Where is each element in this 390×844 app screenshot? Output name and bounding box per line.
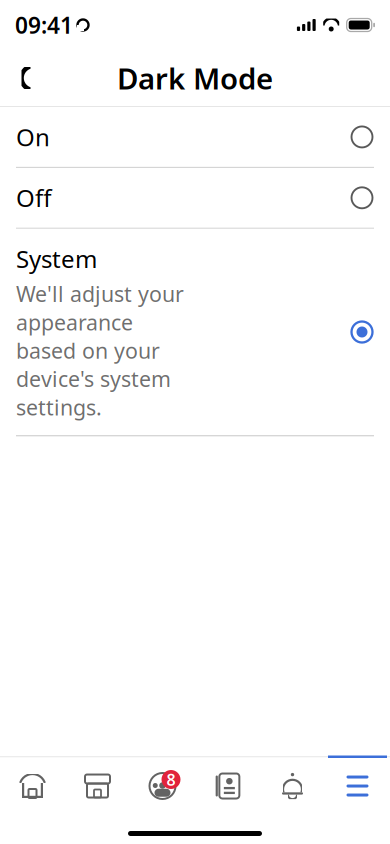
staticText: We'll adjust your appearance based on yo… <box>16 280 184 421</box>
staticText: On <box>16 121 50 153</box>
button[interactable]: Menu <box>325 758 390 814</box>
button[interactable]: Notifications <box>260 758 325 814</box>
button[interactable]: Home <box>0 758 65 814</box>
button[interactable]: Back <box>4 55 48 101</box>
button[interactable]: Groups <box>130 758 195 814</box>
button[interactable]: News <box>195 758 260 814</box>
staticText: 8 <box>166 769 175 790</box>
staticText: Off <box>16 182 52 214</box>
button[interactable]: Off <box>0 168 390 228</box>
button[interactable]: Marketplace <box>65 758 130 814</box>
staticText: System <box>16 243 97 275</box>
staticText: Dark Mode <box>117 58 273 97</box>
button[interactable]: On <box>0 107 390 167</box>
button[interactable]: System <box>0 229 390 435</box>
staticText: 09:41 <box>15 10 73 40</box>
